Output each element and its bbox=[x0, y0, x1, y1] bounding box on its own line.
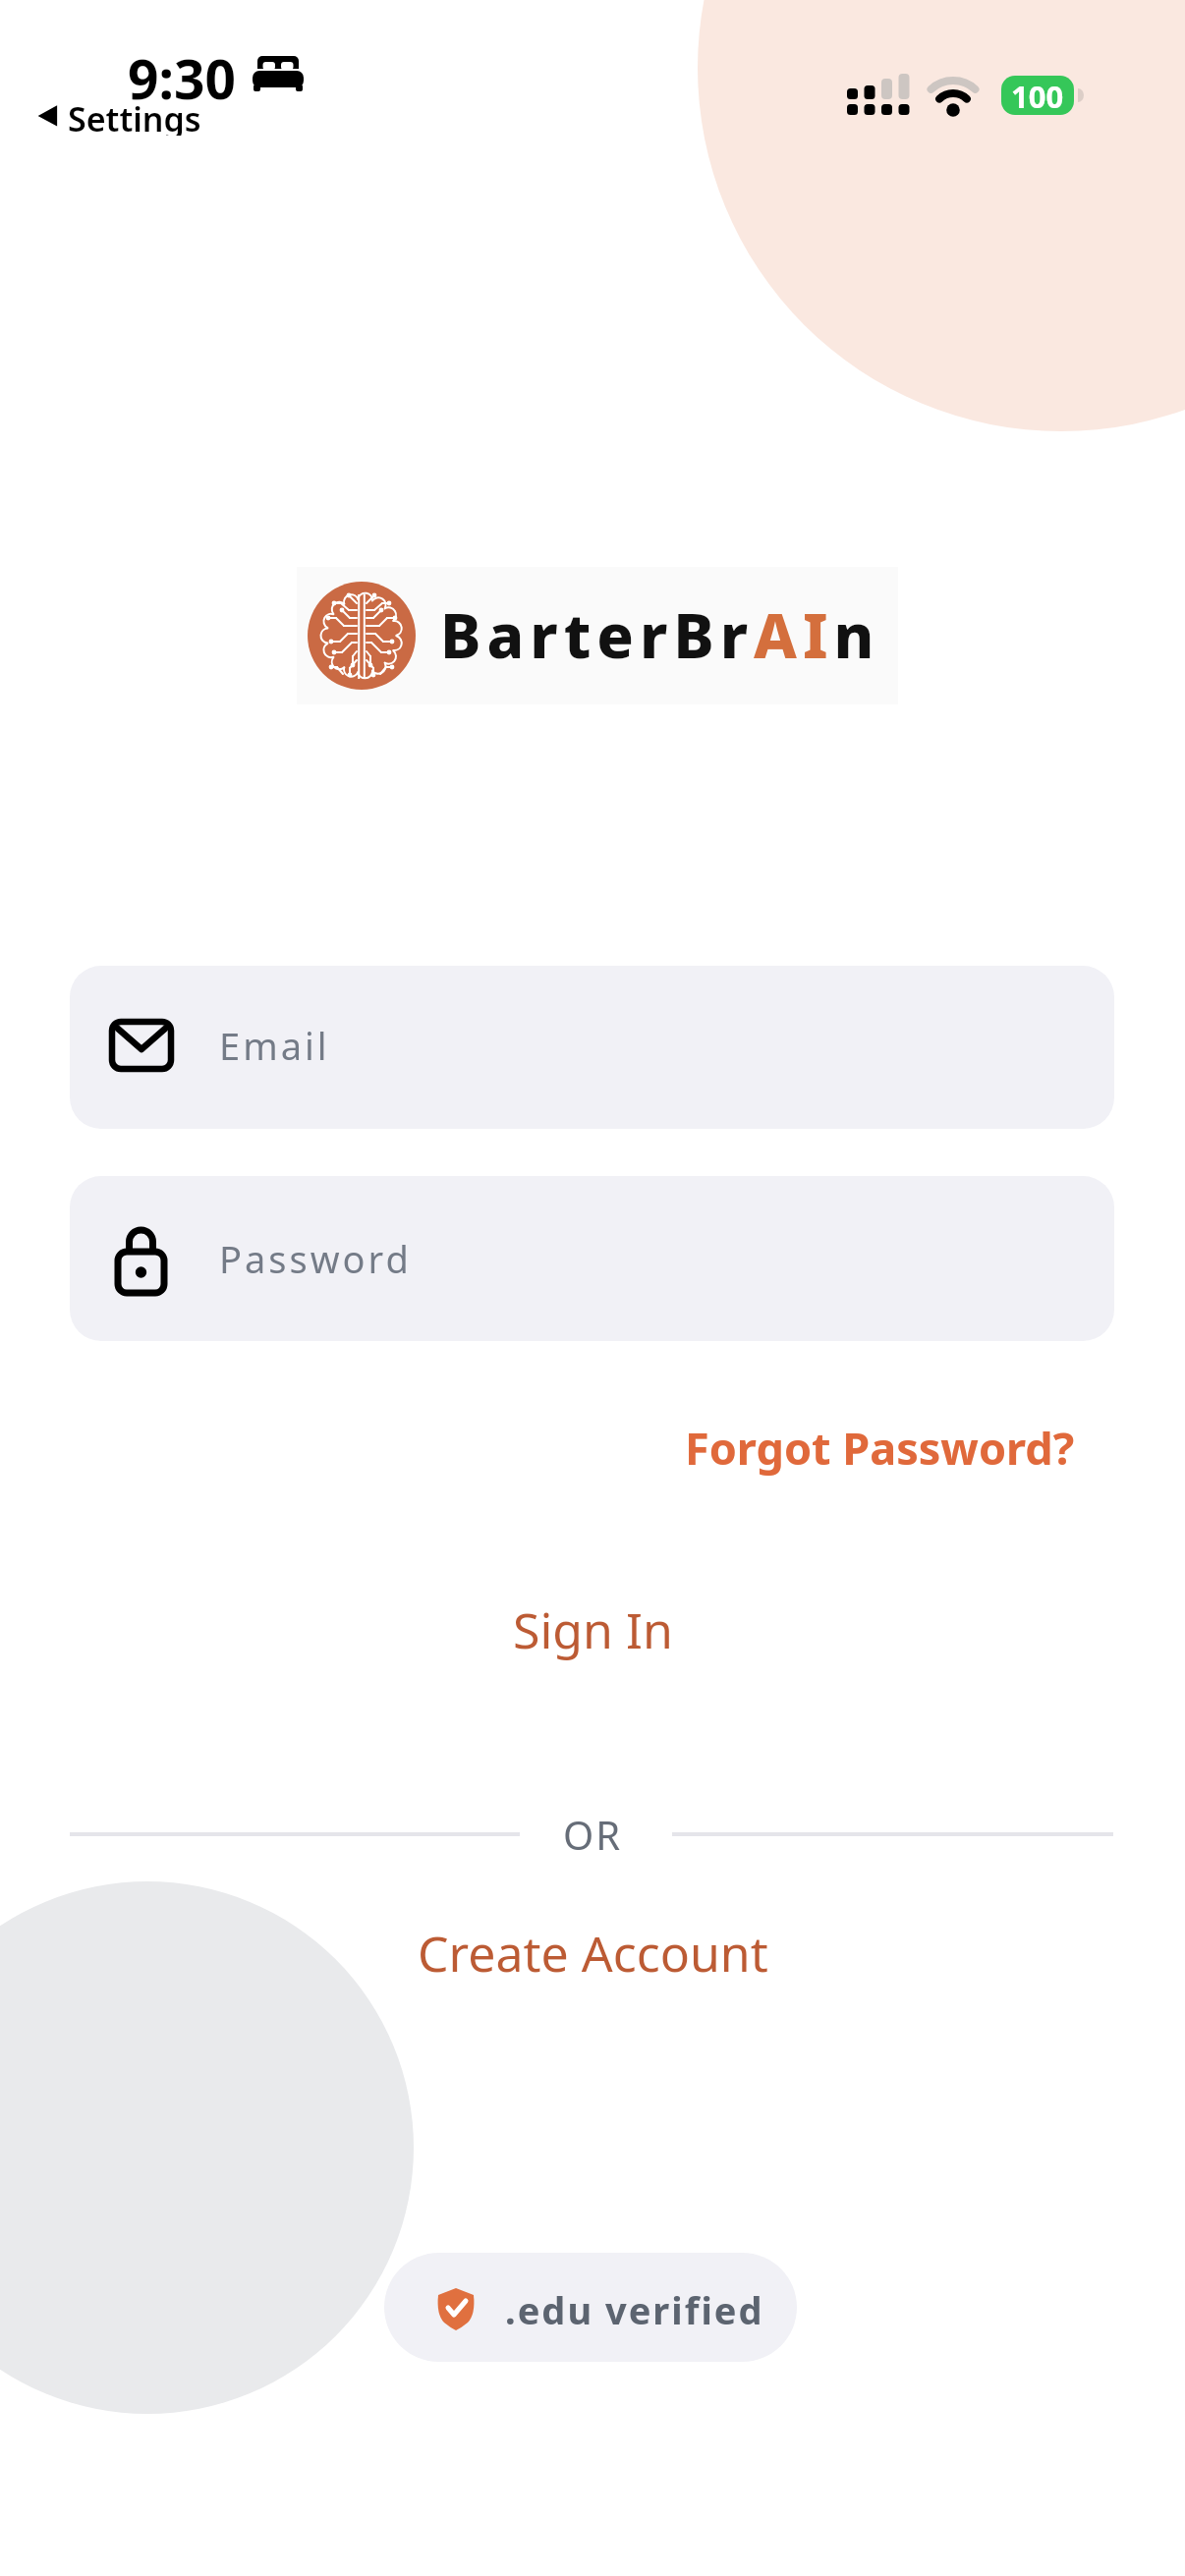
staticText: Password bbox=[219, 1233, 412, 1284]
button[interactable]: Create Account bbox=[347, 1914, 838, 1992]
staticText: Create Account bbox=[418, 1920, 768, 1987]
staticText: OR bbox=[563, 1808, 623, 1861]
button[interactable] bbox=[70, 1176, 1114, 1341]
button[interactable]: Sign In bbox=[396, 1591, 789, 1669]
staticText: Email bbox=[219, 1020, 330, 1071]
staticText: 9:30 bbox=[128, 41, 236, 104]
staticText: BarterBrAIn bbox=[440, 593, 880, 676]
staticText: .edu verified bbox=[505, 2284, 764, 2335]
staticText: Sign In bbox=[513, 1596, 673, 1663]
staticText: Forgot Password? bbox=[685, 1418, 1075, 1478]
button[interactable] bbox=[384, 2253, 797, 2362]
button[interactable] bbox=[70, 966, 1114, 1129]
staticText: Settings bbox=[68, 96, 201, 136]
button[interactable]: Forgot Password? bbox=[590, 1416, 1075, 1479]
staticText: 100 bbox=[1011, 76, 1064, 115]
